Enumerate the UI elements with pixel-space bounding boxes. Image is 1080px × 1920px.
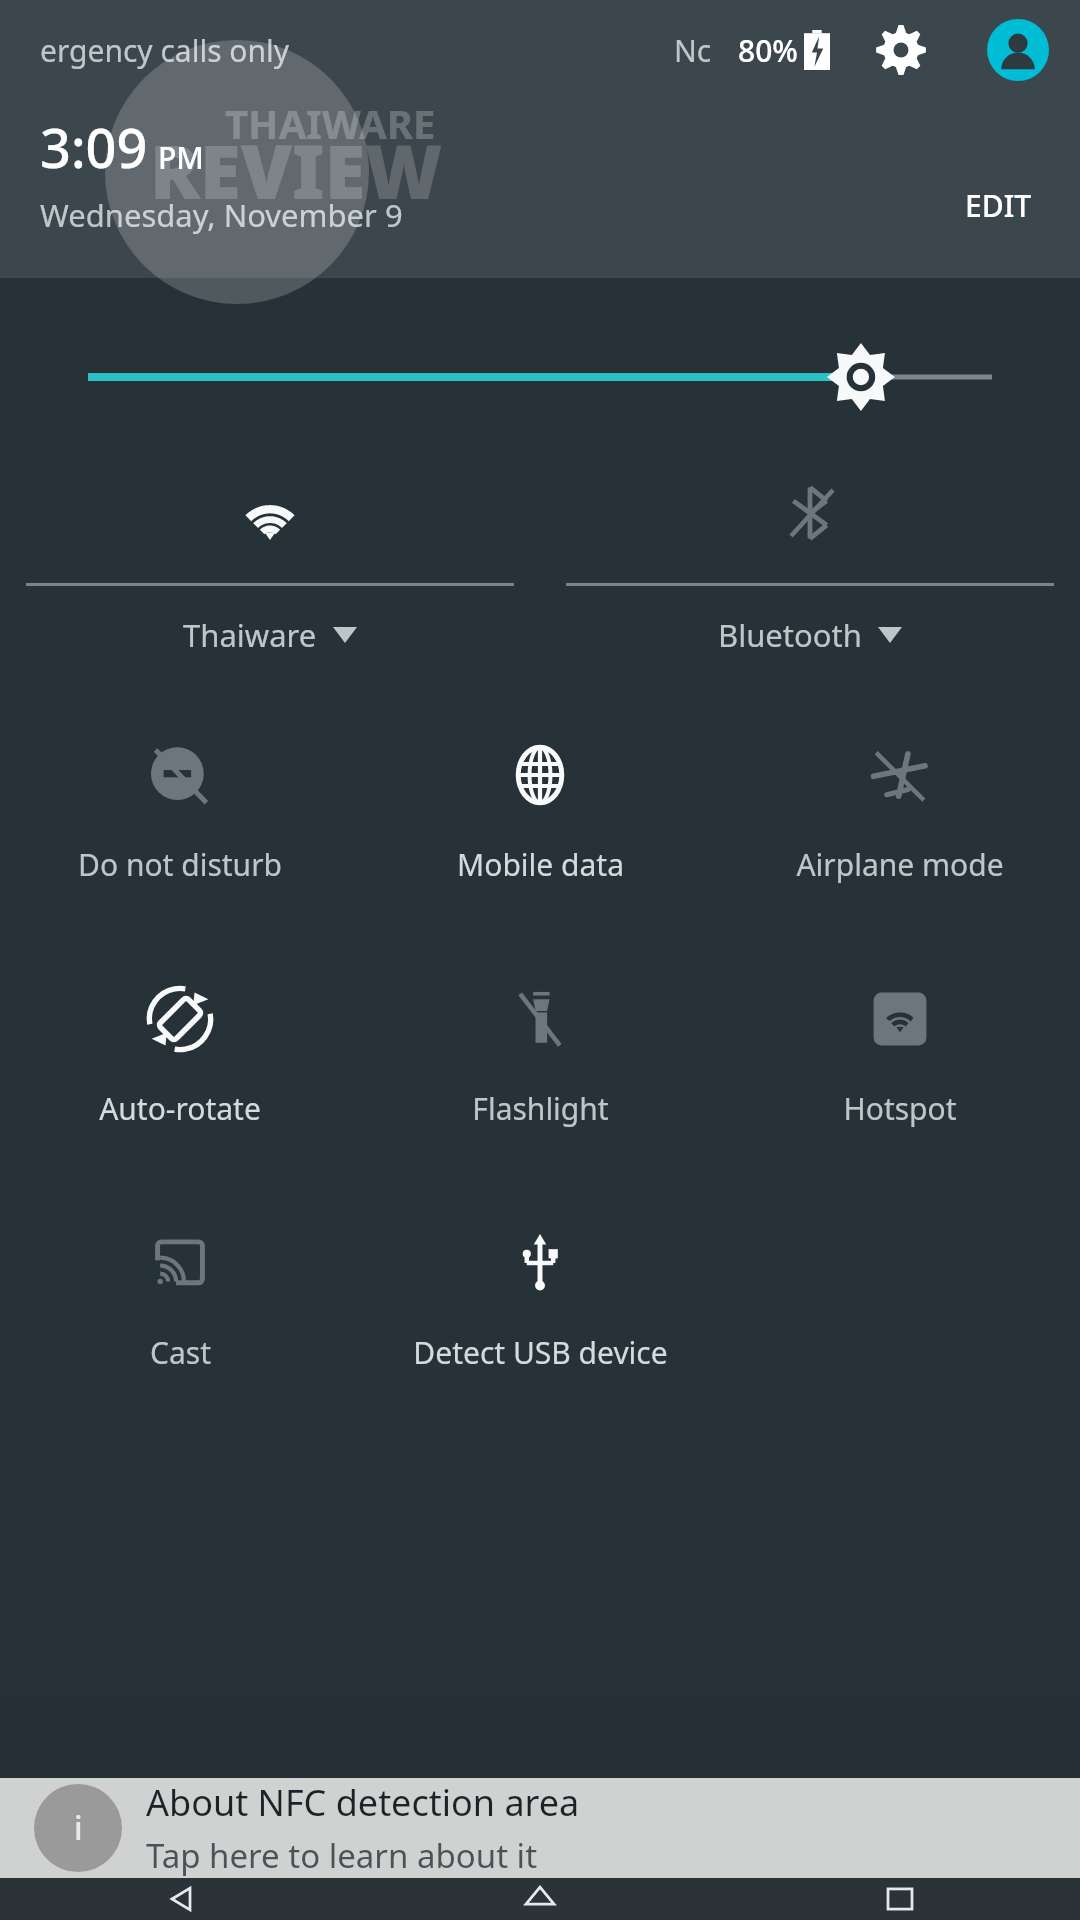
staticText: About NFC detection area — [146, 1778, 580, 1827]
staticText: Airplane mode — [796, 844, 1004, 885]
staticText: Do not disturb — [78, 844, 282, 885]
button[interactable]: Detect USB device — [360, 1202, 720, 1412]
button[interactable]: Auto-rotate — [0, 958, 360, 1168]
button[interactable]: Do not disturb — [0, 714, 360, 924]
staticText: i — [74, 1806, 83, 1850]
button[interactable]: Airplane mode — [720, 714, 1080, 924]
button[interactable]: Brightness — [0, 341, 1080, 413]
button[interactable]: Flashlight — [360, 958, 720, 1168]
button[interactable]: Recents — [720, 1878, 1080, 1920]
staticText: Bluetooth — [718, 614, 862, 656]
staticText: 3:09 — [40, 110, 148, 184]
staticText: Hotspot — [843, 1088, 957, 1129]
staticText: Detect USB device — [413, 1332, 668, 1373]
staticText: Mobile data — [457, 844, 624, 885]
button[interactable]: Settings — [870, 19, 932, 81]
button[interactable]: i — [0, 1778, 1080, 1878]
button[interactable]: Mobile data — [360, 714, 720, 924]
staticText: EDIT — [965, 185, 1032, 226]
button[interactable]: Bluetooth — [540, 475, 1080, 656]
staticText: PM — [158, 137, 204, 178]
staticText: Nc — [674, 30, 712, 71]
staticText: Cast — [150, 1332, 211, 1373]
staticText: Tap here to learn about it — [146, 1833, 538, 1878]
staticText: Auto-rotate — [99, 1088, 261, 1129]
button[interactable]: Back — [0, 1878, 360, 1920]
button[interactable]: User profile — [986, 18, 1050, 82]
button[interactable]: EDIT — [953, 177, 1044, 234]
staticText: Thaiware — [183, 614, 317, 656]
staticText: REVIEW — [150, 120, 443, 221]
staticText: THAIWARE — [225, 96, 436, 150]
button[interactable]: Home — [360, 1878, 720, 1920]
staticText: Flashlight — [472, 1088, 609, 1129]
staticText: ergency calls only — [40, 30, 290, 71]
button[interactable]: Thaiware — [0, 475, 540, 656]
button[interactable]: Hotspot — [720, 958, 1080, 1168]
staticText: 80% — [738, 30, 798, 71]
staticText: Wednesday, November 9 — [40, 194, 403, 236]
button[interactable]: Cast — [0, 1202, 360, 1412]
